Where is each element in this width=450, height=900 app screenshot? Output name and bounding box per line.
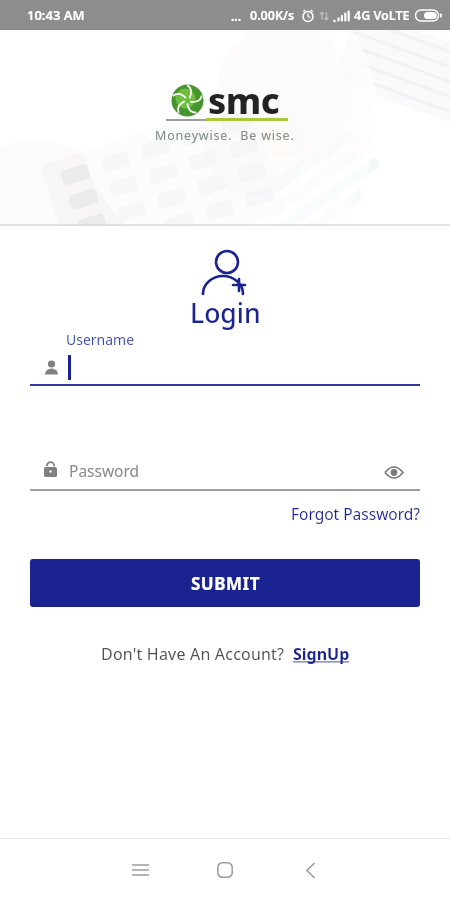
button[interactable] [284, 844, 336, 896]
staticText: SUBMIT [191, 572, 260, 595]
button[interactable]: Password [30, 455, 420, 489]
staticText: Moneywise. Be wise. [155, 127, 295, 144]
staticText: Username [66, 330, 135, 349]
button[interactable] [199, 844, 251, 896]
staticText: Login [190, 295, 261, 331]
staticText: 4G VoLTE [354, 7, 410, 24]
button[interactable] [30, 352, 420, 386]
staticText: ... [231, 8, 242, 24]
button[interactable] [385, 466, 403, 479]
staticText: Password [69, 460, 140, 481]
staticText: 0.00K/s [250, 7, 295, 24]
button[interactable]: SUBMIT [30, 559, 420, 607]
button[interactable]: SignUp [293, 643, 350, 665]
staticText: smc [208, 76, 280, 125]
staticText: Don't Have An Account? [101, 643, 293, 665]
button[interactable] [114, 844, 166, 896]
staticText: 10:43 AM [27, 6, 85, 24]
button[interactable]: Forgot Password? [291, 503, 421, 524]
